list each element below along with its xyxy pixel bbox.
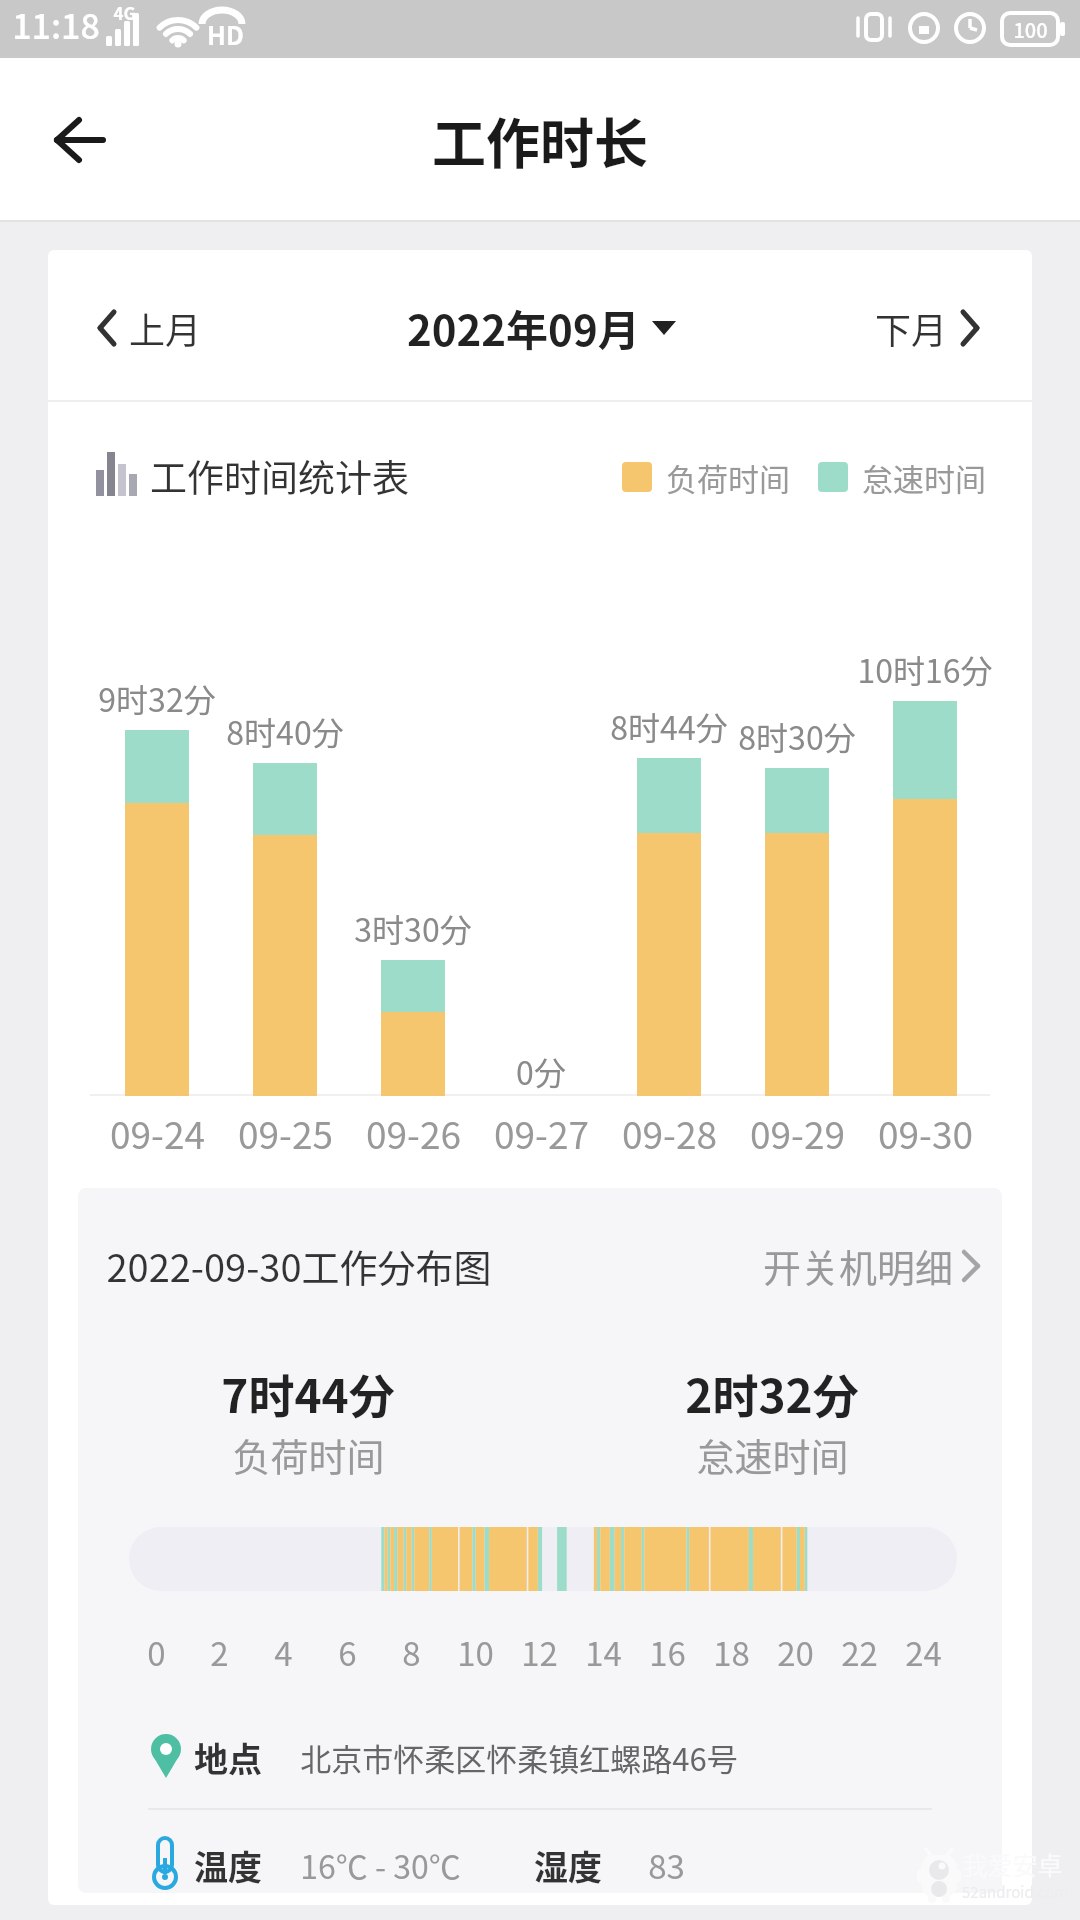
staticText: 4G [113, 0, 136, 22]
staticText: 下月 [875, 302, 948, 354]
staticText: 18 [713, 1628, 750, 1672]
staticText: 24 [905, 1628, 942, 1672]
staticText: 12 [521, 1628, 558, 1672]
button[interactable]: 下月 [862, 292, 992, 364]
staticText: 温度 [194, 1841, 262, 1890]
staticText: 09-28 [622, 1106, 717, 1150]
staticText: 开关机明细 [763, 1238, 954, 1293]
staticText: 北京市怀柔区怀柔镇红螺路46号 [300, 1735, 738, 1780]
staticText: 0分 [516, 1048, 566, 1090]
staticText: 2022年09月 [407, 297, 640, 358]
staticText: 7时44分 [221, 1360, 395, 1420]
staticText: 怠速时间 [696, 1427, 849, 1477]
staticText: 10时16分 [857, 646, 993, 688]
staticText: 14 [585, 1628, 622, 1672]
staticText: 11:18 [12, 0, 100, 46]
staticText: 8 [402, 1628, 421, 1672]
staticText: 上月 [129, 302, 202, 354]
staticText: 83 [648, 1841, 685, 1889]
staticText: 10 [457, 1628, 494, 1672]
button[interactable]: 开关机明细 [740, 1237, 980, 1293]
button[interactable] [48, 108, 112, 172]
staticText: 0 [147, 1628, 166, 1672]
staticText: 我爱安卓 [962, 1846, 1063, 1880]
staticText: 9时32分 [98, 675, 216, 717]
staticText: 09-30 [878, 1106, 973, 1150]
staticText: 工作时间统计表 [150, 449, 409, 503]
button[interactable]: 2022年09月 [395, 288, 687, 366]
staticText: 负荷时间 [232, 1427, 385, 1477]
staticText: 09-25 [238, 1106, 333, 1150]
staticText: 09-24 [110, 1106, 205, 1150]
staticText: 8时30分 [738, 713, 856, 755]
staticText: 8时40分 [226, 708, 344, 750]
staticText: 22 [841, 1628, 878, 1672]
staticText: 8时44分 [610, 703, 728, 745]
staticText: 6 [338, 1628, 357, 1672]
staticText: 09-26 [366, 1106, 461, 1150]
staticText: 3时30分 [354, 905, 472, 947]
staticText: 16℃ - 30℃ [300, 1842, 461, 1888]
staticText: 2022-09-30工作分布图 [106, 1238, 492, 1293]
staticText: 20 [777, 1628, 814, 1672]
staticText: 负荷时间 [666, 455, 790, 500]
staticText: 2时32分 [685, 1360, 859, 1420]
staticText: 怠速时间 [862, 455, 986, 500]
staticText: 地点 [194, 1733, 262, 1782]
staticText: 4 [274, 1628, 293, 1672]
staticText: 2 [210, 1628, 229, 1672]
button[interactable]: 上月 [84, 292, 214, 364]
staticText: 工作时长 [432, 101, 648, 171]
staticText: 100 [1013, 15, 1048, 44]
staticText: 09-29 [750, 1106, 845, 1150]
staticText: 湿度 [534, 1841, 602, 1890]
staticText: 09-27 [494, 1106, 589, 1150]
staticText: 52android.com [962, 1881, 1068, 1903]
staticText: HD [207, 16, 244, 48]
staticText: 16 [649, 1628, 686, 1672]
